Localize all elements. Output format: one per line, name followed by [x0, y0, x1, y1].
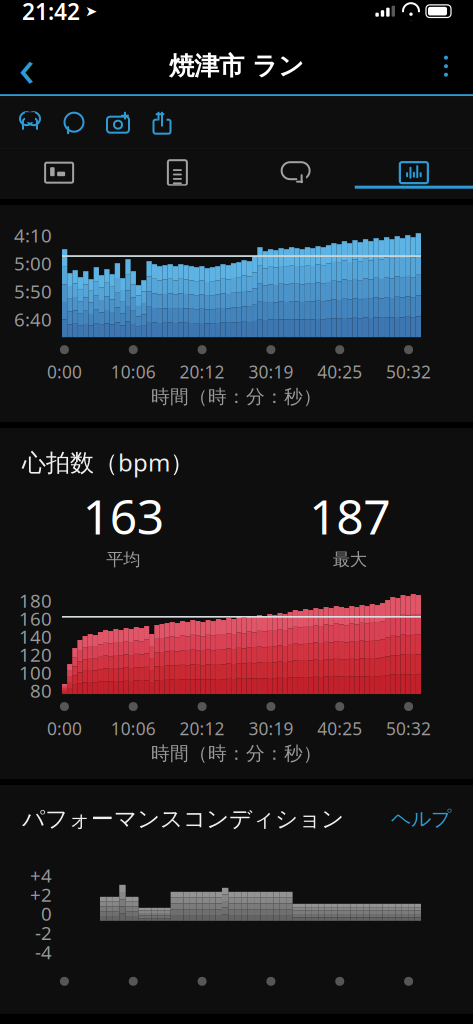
staticText: 焼津市 ラン [169, 51, 304, 82]
staticText: 20:12 [180, 717, 225, 740]
staticText: 50:32 [386, 717, 431, 740]
staticText: 120 [19, 642, 52, 667]
staticText: ‹ [18, 31, 35, 102]
button[interactable]: Like [8, 97, 52, 147]
staticText: 30:19 [248, 360, 293, 383]
staticText: 163 [83, 484, 164, 548]
button[interactable]: More options [419, 38, 473, 94]
staticText: 50:32 [386, 360, 431, 383]
button[interactable]: Back [0, 38, 54, 94]
staticText: 160 [19, 606, 52, 631]
staticText: 心拍数（bpm） [22, 446, 194, 478]
staticText: 40:25 [317, 360, 362, 383]
staticText: 4:10 [14, 223, 52, 248]
button[interactable]: Charts [355, 149, 473, 199]
staticText: 10:06 [111, 717, 156, 740]
staticText: 6:40 [14, 307, 52, 332]
staticText: 100 [19, 660, 52, 685]
staticText: +4 [30, 863, 52, 888]
staticText: 0:00 [47, 717, 82, 740]
staticText: 30:19 [248, 717, 293, 740]
staticText: 0 [41, 901, 52, 926]
staticText: -4 [35, 940, 52, 964]
staticText: ヘルプ [391, 807, 451, 831]
staticText: 時間（時：分：秒） [151, 385, 322, 408]
staticText: 平均 [106, 549, 140, 570]
staticText: 20:12 [180, 360, 225, 383]
button[interactable]: Comment [52, 97, 96, 147]
button[interactable]: Map [0, 149, 118, 199]
button[interactable]: Details [118, 149, 236, 199]
staticText: +2 [30, 882, 52, 907]
button[interactable]: Share [140, 97, 184, 147]
staticText: -2 [35, 920, 52, 945]
button[interactable]: ヘルプ [391, 807, 451, 831]
staticText: 40:25 [317, 717, 362, 740]
staticText: ➤ [85, 3, 97, 19]
staticText: 80 [30, 678, 52, 703]
staticText: 140 [19, 624, 52, 649]
staticText: 187 [309, 484, 390, 548]
staticText: パフォーマンスコンディション [22, 805, 344, 833]
staticText: 0:00 [47, 360, 82, 383]
staticText: 180 [19, 588, 52, 613]
staticText: 5:50 [14, 279, 52, 304]
staticText: 最大 [333, 549, 367, 570]
staticText: 21:42 [22, 0, 80, 26]
button[interactable]: Add photo [96, 97, 140, 147]
staticText: 10:06 [111, 360, 156, 383]
staticText: 5:00 [14, 251, 52, 276]
button[interactable]: Laps [236, 149, 355, 199]
staticText: 時間（時：分：秒） [151, 742, 322, 765]
